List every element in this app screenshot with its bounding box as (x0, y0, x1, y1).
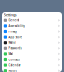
staticText: Notes (8, 69, 16, 72)
button[interactable]: Passwords (2, 45, 62, 51)
button[interactable]: Contacts (2, 57, 62, 62)
button[interactable]: Mail (2, 51, 62, 57)
staticText: Accessibility (8, 24, 24, 28)
staticText: Calendar (8, 63, 20, 67)
button[interactable]: Accessibility (2, 23, 62, 29)
button[interactable]: Calendar (2, 62, 62, 68)
button[interactable]: Privacy (2, 29, 62, 34)
staticText: Settings (4, 12, 17, 17)
staticText: Passwords (8, 46, 21, 50)
staticText: Contacts (8, 58, 19, 61)
staticText: App Store (8, 35, 22, 39)
button[interactable]: Wallet (2, 40, 62, 45)
staticText: General (8, 18, 19, 22)
staticText: Mail (8, 52, 13, 56)
button[interactable]: General (2, 17, 62, 23)
staticText: Privacy (8, 30, 16, 33)
button[interactable]: Notes (2, 68, 62, 72)
button[interactable]: App Store (2, 34, 62, 40)
staticText: Wallet (8, 41, 16, 44)
